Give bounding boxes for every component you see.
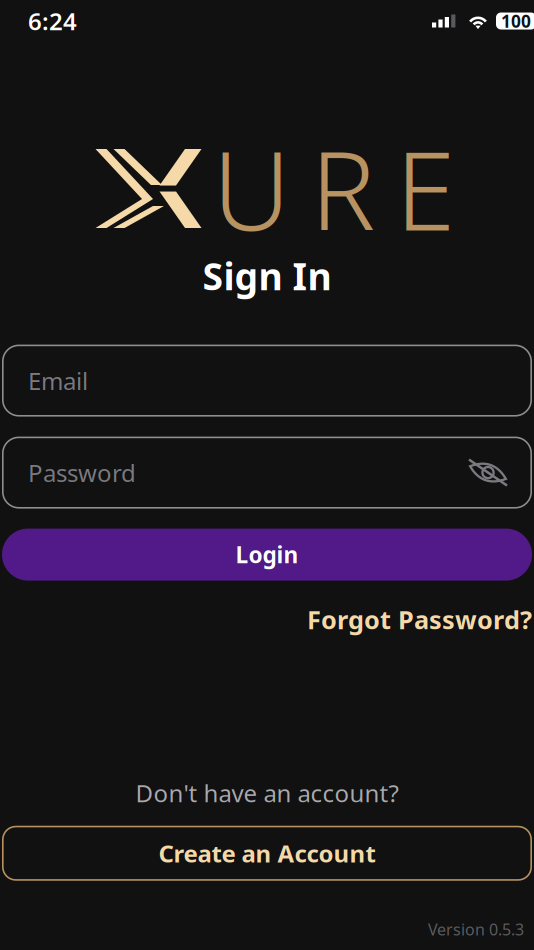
button[interactable]: Show password: [467, 458, 509, 488]
staticText: Create an Account: [158, 837, 375, 869]
staticText: Don't have an account?: [135, 777, 398, 809]
button[interactable]: Forgot Password?: [307, 603, 532, 636]
button[interactable]: Create an Account: [2, 826, 532, 881]
staticText: 6:24: [28, 5, 77, 37]
button[interactable]: Login: [2, 529, 532, 581]
staticText: Forgot Password?: [307, 603, 532, 636]
staticText: Sign In: [202, 251, 331, 301]
staticText: Password: [28, 457, 136, 488]
staticText: Login: [235, 539, 298, 570]
staticText: URE: [212, 117, 455, 260]
staticText: Email: [28, 365, 88, 396]
staticText: 100: [501, 9, 531, 32]
staticText: Version 0.5.3: [428, 919, 524, 940]
